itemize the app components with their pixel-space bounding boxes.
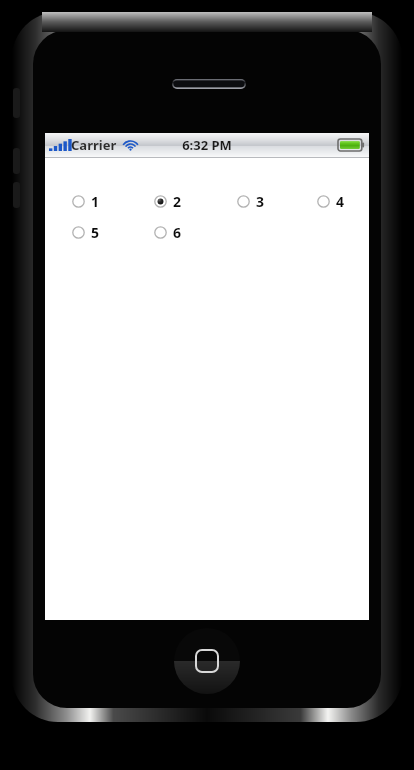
button[interactable]: 4 bbox=[316, 190, 346, 212]
staticText: 6 bbox=[173, 223, 182, 242]
staticText: 4 bbox=[336, 192, 345, 211]
staticText: 1 bbox=[91, 192, 100, 211]
staticText: 3 bbox=[256, 192, 265, 211]
button[interactable]: 3 bbox=[236, 190, 266, 212]
staticText: Carrier bbox=[71, 136, 117, 154]
staticText: 2 bbox=[173, 192, 182, 211]
button[interactable]: 1 bbox=[71, 190, 101, 212]
button[interactable]: 5 bbox=[71, 221, 101, 243]
button[interactable]: 6 bbox=[153, 221, 183, 243]
staticText: 5 bbox=[91, 223, 100, 242]
button[interactable]: 2 bbox=[153, 190, 183, 212]
staticText: 6:32 PM bbox=[182, 136, 232, 154]
